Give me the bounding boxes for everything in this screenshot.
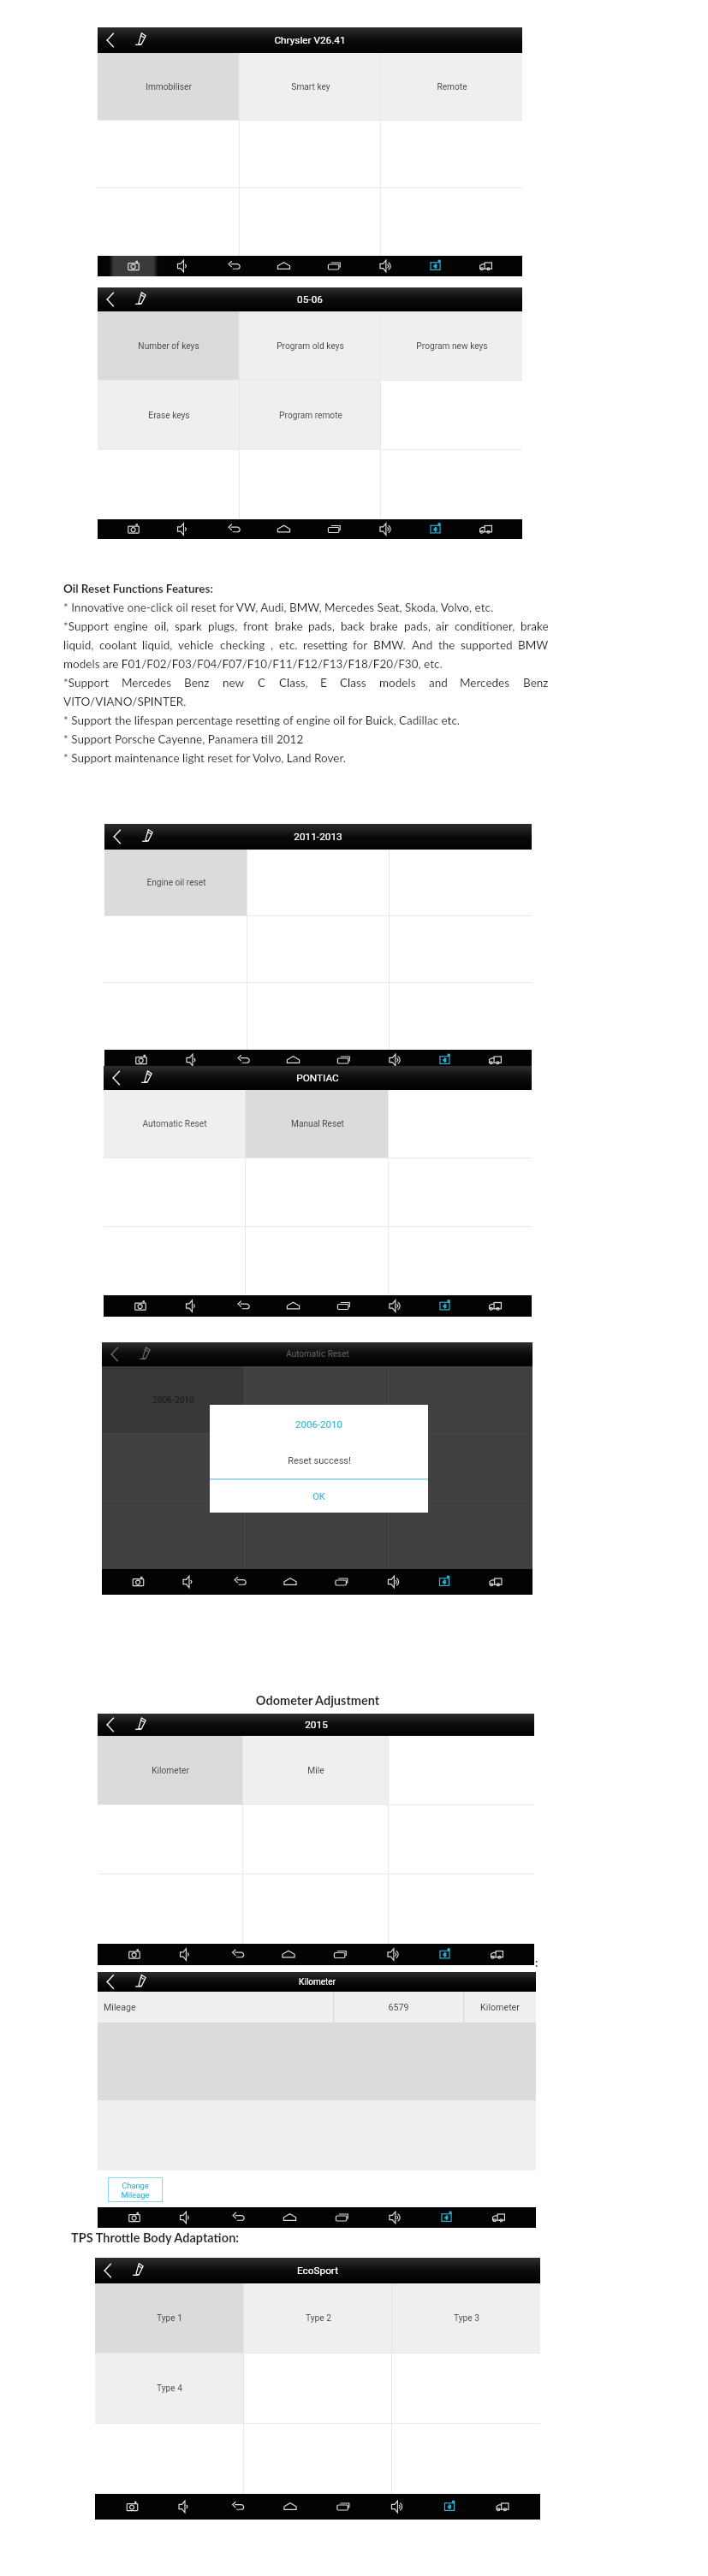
button[interactable]: Volume down <box>158 256 208 276</box>
button[interactable]: Screenshot <box>106 2494 158 2520</box>
button[interactable]: Bluetooth <box>410 519 461 539</box>
button[interactable]: Home <box>259 519 309 539</box>
button[interactable]: Volume up <box>367 1569 419 1595</box>
button[interactable]: Screenshot <box>115 1295 166 1317</box>
button[interactable]: Program remote <box>240 381 381 450</box>
button[interactable]: Edit <box>128 1972 153 1992</box>
button[interactable]: Kilometer <box>464 1992 536 2022</box>
button[interactable]: Automatic Reset <box>104 1090 246 1158</box>
button[interactable]: Screenshot <box>113 1569 164 1595</box>
button[interactable] <box>245 1366 389 1434</box>
button[interactable]: Volume down <box>166 1295 217 1317</box>
button[interactable]: Volume up <box>366 1944 419 1965</box>
button[interactable]: Back <box>98 1972 123 1992</box>
button[interactable]: Bluetooth <box>423 2494 476 2520</box>
button[interactable]: Engine oil reset <box>104 850 247 916</box>
button[interactable]: Screenshot <box>109 2207 160 2228</box>
button[interactable]: Volume down <box>160 1944 211 1965</box>
button[interactable]: Volume down <box>160 2207 211 2228</box>
button[interactable]: Type 2 <box>244 2283 392 2354</box>
button[interactable]: Back <box>98 27 123 53</box>
button[interactable] <box>389 1501 532 1569</box>
button[interactable]: Bluetooth <box>419 1050 470 1070</box>
button[interactable]: Vehicle <box>471 1944 523 1965</box>
button[interactable]: Back <box>104 824 130 850</box>
button[interactable]: Recents <box>317 2494 370 2520</box>
button[interactable]: Home <box>268 1050 318 1070</box>
button[interactable] <box>246 1158 389 1227</box>
button[interactable]: Volume up <box>369 1050 419 1070</box>
button[interactable]: Volume up <box>369 1295 419 1317</box>
button[interactable]: Type 4 <box>95 2354 244 2424</box>
button[interactable]: Screenshot <box>109 256 158 276</box>
button[interactable]: Back <box>98 287 123 311</box>
button[interactable]: Volume up <box>360 256 410 276</box>
button[interactable]: Screenshot <box>116 1050 167 1070</box>
button[interactable] <box>389 1366 532 1434</box>
button[interactable]: Mile <box>243 1736 389 1805</box>
button[interactable] <box>104 1158 246 1227</box>
button[interactable]: Back <box>211 2207 264 2228</box>
button[interactable]: Home <box>259 256 309 276</box>
button[interactable]: 6579 <box>334 1992 463 2022</box>
button[interactable]: Home <box>265 1569 316 1595</box>
button[interactable] <box>102 1434 245 1501</box>
button[interactable]: Recents <box>318 1050 369 1070</box>
button[interactable]: Program new keys <box>381 311 522 381</box>
button[interactable]: Recents <box>318 1295 369 1317</box>
button[interactable]: Edit <box>134 1066 159 1090</box>
button[interactable]: Bluetooth <box>419 1569 470 1595</box>
button[interactable]: Bluetooth <box>410 256 461 276</box>
button[interactable]: Volume down <box>167 1050 217 1070</box>
button[interactable] <box>243 1874 389 1944</box>
button[interactable]: Volume down <box>158 2494 211 2520</box>
button[interactable]: Vehicle <box>470 1050 521 1070</box>
button[interactable]: Recents <box>309 256 360 276</box>
button[interactable]: OK <box>210 1480 428 1513</box>
button[interactable]: Bluetooth <box>419 1295 470 1317</box>
button[interactable]: Kilometer <box>98 1736 243 1805</box>
button[interactable]: Remote <box>381 53 522 121</box>
button[interactable]: Recents <box>316 1569 367 1595</box>
button[interactable]: Volume up <box>370 2494 423 2520</box>
button[interactable]: Edit <box>132 1342 158 1366</box>
button[interactable]: Volume down <box>164 1569 214 1595</box>
button[interactable]: Volume down <box>158 519 208 539</box>
button[interactable]: Back <box>208 519 259 539</box>
button[interactable]: Vehicle <box>470 1569 521 1595</box>
button[interactable]: Back <box>104 1066 129 1090</box>
button[interactable]: Recents <box>316 2207 368 2228</box>
button[interactable]: Vehicle <box>461 519 511 539</box>
button[interactable]: Type 1 <box>95 2283 244 2354</box>
button[interactable]: Recents <box>309 519 360 539</box>
button[interactable]: Erase keys <box>98 381 240 450</box>
button[interactable]: Change Mileage <box>108 2177 163 2202</box>
button[interactable]: Edit <box>128 1714 153 1736</box>
button[interactable] <box>389 1434 532 1501</box>
button[interactable]: Recents <box>314 1944 366 1965</box>
button[interactable]: Bluetooth <box>420 2207 473 2228</box>
button[interactable]: Back <box>95 2258 121 2283</box>
button[interactable]: 2006-2010 <box>102 1366 245 1434</box>
button[interactable]: Back <box>211 2494 264 2520</box>
